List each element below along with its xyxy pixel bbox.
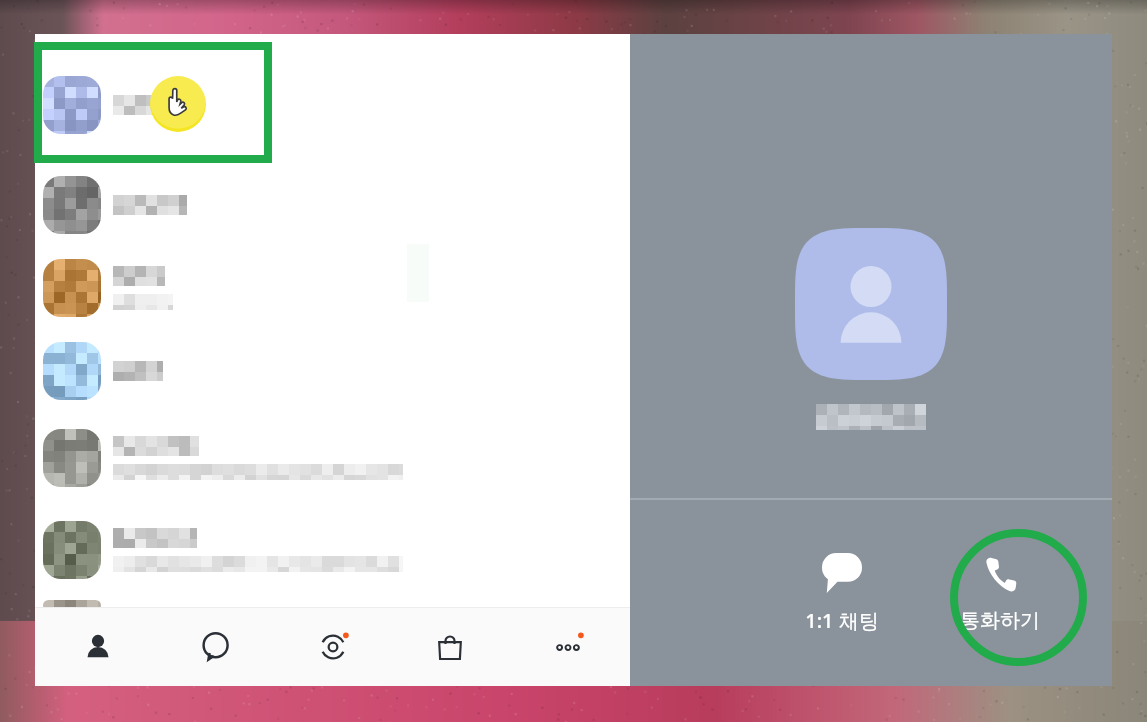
button[interactable] xyxy=(35,246,630,330)
staticText: 통화하기 xyxy=(960,608,1040,633)
button[interactable] xyxy=(35,34,630,46)
button[interactable] xyxy=(35,46,630,164)
button[interactable]: More xyxy=(513,608,623,686)
button[interactable] xyxy=(35,504,630,596)
button[interactable]: 1:1 채팅 xyxy=(767,543,917,644)
button[interactable]: Open Chat xyxy=(278,608,388,686)
button[interactable] xyxy=(35,412,630,504)
button[interactable]: Chats xyxy=(160,608,270,686)
button[interactable]: 통화하기 xyxy=(925,544,1075,643)
button[interactable]: Friends xyxy=(43,608,153,686)
button[interactable] xyxy=(35,164,630,246)
button[interactable] xyxy=(35,596,630,607)
button[interactable]: Shopping xyxy=(395,608,505,686)
button[interactable] xyxy=(35,330,630,412)
staticText: 1:1 채팅 xyxy=(805,607,879,634)
